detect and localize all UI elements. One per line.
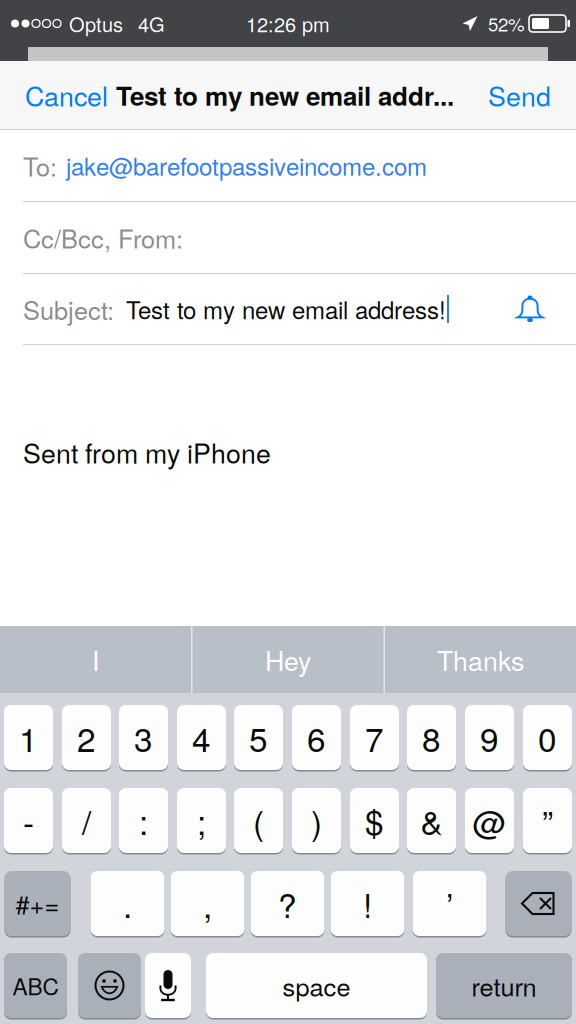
button[interactable]: . xyxy=(90,871,164,936)
button[interactable]: Backspace xyxy=(505,871,571,936)
staticText: Cc/Bcc, From: xyxy=(23,219,183,256)
button[interactable]: To: xyxy=(0,130,576,201)
staticText: Cancel xyxy=(25,76,108,114)
button[interactable]: - xyxy=(4,788,53,853)
staticText: . xyxy=(123,880,132,927)
staticText: jake@barefootpassiveincome.com xyxy=(66,148,427,183)
staticText: Test to my new email address! xyxy=(126,292,446,326)
button[interactable]: I xyxy=(0,626,191,693)
button[interactable]: 1 xyxy=(4,705,53,770)
button[interactable]: 4 xyxy=(177,705,226,770)
button[interactable]: : xyxy=(119,788,168,853)
button[interactable]: 8 xyxy=(407,705,456,770)
button[interactable]: Hey xyxy=(192,626,383,693)
button[interactable]: 6 xyxy=(292,705,341,770)
staticText: ” xyxy=(542,797,553,844)
staticText: 5 xyxy=(249,714,268,761)
staticText: 7 xyxy=(365,714,384,761)
button[interactable]: 5 xyxy=(234,705,283,770)
button[interactable]: ( xyxy=(234,788,283,853)
staticText: - xyxy=(23,797,34,844)
staticText: Test to my new email addr... xyxy=(116,76,454,114)
staticText: & xyxy=(420,797,442,844)
button[interactable]: 2 xyxy=(62,705,111,770)
staticText: 4 xyxy=(192,714,211,761)
staticText: Subject: xyxy=(23,291,114,327)
button[interactable]: Thanks xyxy=(385,626,576,693)
button[interactable]: ; xyxy=(177,788,226,853)
staticText: ABC xyxy=(12,969,58,1002)
button[interactable]: & xyxy=(407,788,456,853)
staticText: space xyxy=(282,967,350,1004)
button[interactable]: ’ xyxy=(412,871,486,936)
button[interactable]: 0 xyxy=(523,705,572,770)
button[interactable]: 9 xyxy=(465,705,514,770)
button[interactable]: $ xyxy=(350,788,399,853)
staticText: ! xyxy=(363,880,372,927)
button[interactable]: 3 xyxy=(119,705,168,770)
button[interactable]: / xyxy=(62,788,111,853)
button[interactable]: return xyxy=(436,953,572,1018)
button[interactable]: ! xyxy=(330,871,404,936)
button[interactable]: 7 xyxy=(350,705,399,770)
staticText: I xyxy=(92,640,99,679)
staticText: Sent from my iPhone xyxy=(23,433,271,471)
button[interactable]: space xyxy=(206,953,427,1018)
staticText: $ xyxy=(365,797,384,844)
staticText: return xyxy=(471,967,536,1004)
button[interactable]: ) xyxy=(292,788,341,853)
button[interactable]: ? xyxy=(250,871,324,936)
button[interactable]: Cc/Bcc, From: xyxy=(0,202,576,273)
button[interactable]: ABC xyxy=(4,953,67,1018)
button[interactable]: Send xyxy=(486,62,553,128)
staticText: 4G xyxy=(138,9,165,38)
staticText: 1 xyxy=(19,714,38,761)
button[interactable]: #+= xyxy=(4,871,70,936)
staticText: 2 xyxy=(77,714,96,761)
staticText: Hey xyxy=(265,640,311,679)
button[interactable]: Cancel xyxy=(23,62,110,128)
staticText: Send xyxy=(488,76,551,114)
staticText: 12:26 pm xyxy=(246,9,330,38)
button[interactable]: Dictation xyxy=(145,953,191,1018)
button[interactable]: , xyxy=(170,871,244,936)
staticText: ; xyxy=(197,797,206,844)
staticText: ? xyxy=(278,880,297,927)
staticText: ) xyxy=(311,797,322,844)
staticText: @ xyxy=(472,797,506,844)
staticText: 52% xyxy=(488,10,525,37)
button[interactable]: ” xyxy=(523,788,572,853)
staticText: / xyxy=(82,797,91,844)
staticText: ’ xyxy=(446,880,453,927)
staticText: 8 xyxy=(422,714,441,761)
button[interactable]: Subject: xyxy=(0,274,576,344)
staticText: : xyxy=(139,797,148,844)
button[interactable]: @ xyxy=(465,788,514,853)
staticText: Thanks xyxy=(437,640,524,679)
staticText: #+= xyxy=(15,885,59,922)
staticText: To: xyxy=(23,147,57,184)
staticText: , xyxy=(203,880,212,927)
staticText: 3 xyxy=(134,714,153,761)
staticText: 9 xyxy=(480,714,499,761)
button[interactable]: Emoji keyboard xyxy=(78,953,141,1018)
staticText: 6 xyxy=(307,714,326,761)
staticText: 0 xyxy=(538,714,557,761)
staticText: ( xyxy=(253,797,264,844)
staticText: Optus xyxy=(69,9,123,38)
